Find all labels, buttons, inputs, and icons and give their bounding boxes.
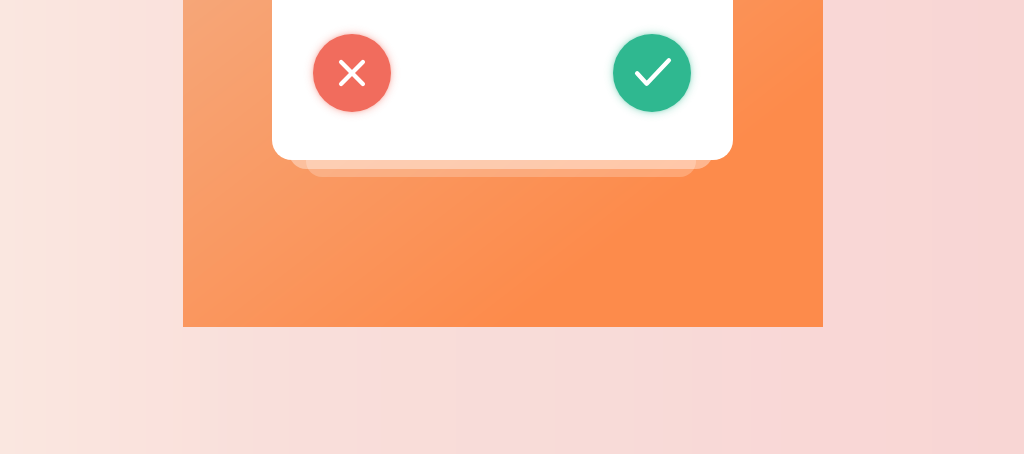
button[interactable]: Reject (313, 34, 391, 112)
button[interactable]: Accept (613, 34, 691, 112)
